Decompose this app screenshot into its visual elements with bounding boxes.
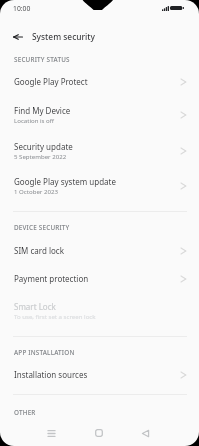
staticText: SECURITY STATUS <box>14 55 70 64</box>
button[interactable]: Recent apps <box>38 422 64 444</box>
button[interactable]: SIM card lock <box>0 236 199 265</box>
button[interactable]: Back <box>132 422 158 444</box>
staticText: Security update <box>14 141 73 152</box>
staticText: 1 October 2023 <box>14 187 58 195</box>
staticText: To use, first set a screen lock <box>14 312 96 320</box>
staticText: Location is off <box>14 116 54 124</box>
staticText: Smart Lock <box>14 301 56 312</box>
button[interactable]: Google Play system update <box>0 168 199 203</box>
staticText: Find My Device <box>14 105 71 116</box>
staticText: Google Play system update <box>14 176 117 187</box>
staticText: Installation sources <box>14 369 88 380</box>
staticText: System security <box>32 31 96 42</box>
button[interactable]: Security update <box>0 133 199 168</box>
staticText: Google Play Protect <box>14 76 88 87</box>
button[interactable]: Find My Device <box>0 97 199 132</box>
staticText: Payment protection <box>14 273 89 284</box>
staticText: APP INSTALLATION <box>14 348 75 357</box>
button[interactable]: Home <box>86 422 112 444</box>
button[interactable]: Google Play Protect <box>0 67 199 96</box>
button[interactable]: Smart Lock <box>0 293 199 328</box>
staticText: 10:00 <box>13 4 31 13</box>
staticText: OTHER <box>14 408 36 417</box>
staticText: SIM card lock <box>14 245 64 256</box>
button[interactable]: Installation sources <box>0 360 199 389</box>
staticText: 5 September 2022 <box>14 152 67 160</box>
button[interactable]: Payment protection <box>0 264 199 293</box>
staticText: DEVICE SECURITY <box>14 223 70 232</box>
button[interactable]: Back <box>7 26 29 48</box>
